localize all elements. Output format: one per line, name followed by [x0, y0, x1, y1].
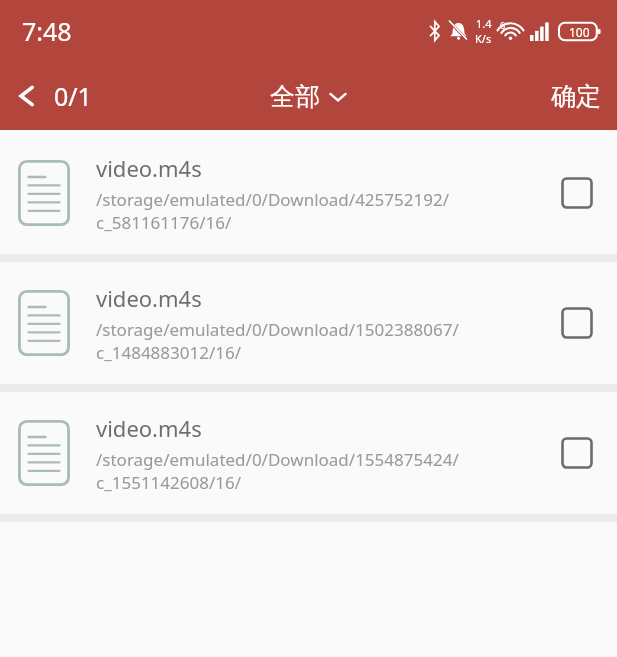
staticText: K/s [475, 31, 492, 46]
staticText: 6 [500, 19, 506, 31]
button[interactable]: 确定 [535, 71, 617, 122]
staticText: /storage/emulated/0/Download/425752192/ [96, 188, 449, 211]
staticText: 全部 [270, 81, 320, 112]
staticText: c_1484883012/16/ [96, 341, 242, 364]
button[interactable]: Back [0, 71, 106, 121]
staticText: 1.4 [476, 16, 492, 31]
button[interactable]: Select file [555, 301, 599, 345]
staticText: video.m4s [96, 413, 202, 443]
button[interactable]: video.m4s [0, 392, 617, 514]
staticText: 确定 [551, 81, 601, 112]
button[interactable]: video.m4s [0, 132, 617, 254]
staticText: c_1551142608/16/ [96, 471, 242, 494]
staticText: c_581161176/16/ [96, 211, 232, 234]
other: Back [14, 83, 40, 109]
staticText: /storage/emulated/0/Download/1502388067/ [96, 318, 459, 341]
button[interactable]: Select file [555, 431, 599, 475]
staticText: 0/1 [54, 79, 92, 113]
staticText: /storage/emulated/0/Download/1554875424/ [96, 448, 459, 471]
staticText: 100 [569, 24, 590, 40]
button[interactable]: 全部 [258, 73, 360, 120]
staticText: video.m4s [96, 283, 202, 313]
staticText: 7:48 [22, 14, 72, 48]
staticText: video.m4s [96, 153, 202, 183]
button[interactable]: video.m4s [0, 262, 617, 384]
button[interactable]: Select file [555, 171, 599, 215]
